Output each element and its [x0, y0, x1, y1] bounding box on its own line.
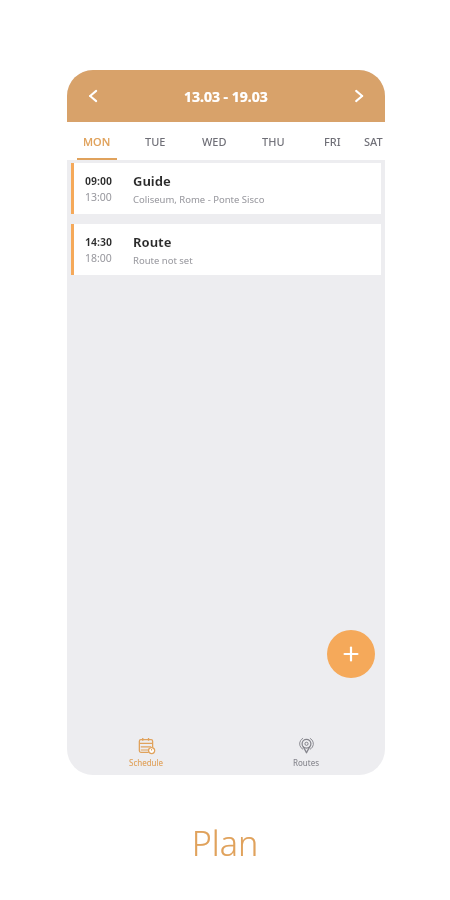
- staticText: 13:00: [85, 190, 112, 204]
- staticText: Coliseum, Rome - Ponte Sisco: [133, 193, 265, 206]
- button[interactable]: TUE: [126, 122, 185, 160]
- staticText: Route: [133, 233, 172, 251]
- staticText: Guide: [133, 172, 171, 190]
- staticText: Routes: [293, 757, 319, 768]
- button[interactable]: FRI: [303, 122, 362, 160]
- staticText: Route not set: [133, 254, 193, 267]
- button[interactable]: Previous week: [75, 78, 111, 114]
- button[interactable]: Schedule: [67, 729, 226, 775]
- staticText: 18:00: [85, 251, 112, 265]
- button[interactable]: 14:30: [71, 224, 381, 275]
- staticText: FRI: [324, 134, 341, 149]
- staticText: Plan: [0, 820, 450, 866]
- staticText: 13.03 - 19.03: [184, 87, 268, 106]
- button[interactable]: 09:00: [71, 163, 381, 214]
- staticText: 14:30: [85, 235, 112, 249]
- staticText: Schedule: [129, 757, 164, 768]
- staticText: WED: [202, 134, 227, 149]
- staticText: TUE: [145, 134, 166, 149]
- button[interactable]: SAT: [362, 122, 385, 160]
- staticText: THU: [262, 134, 285, 149]
- button[interactable]: Add: [327, 630, 375, 678]
- staticText: MON: [83, 134, 111, 149]
- button[interactable]: Next week: [341, 78, 377, 114]
- button[interactable]: THU: [244, 122, 303, 160]
- button[interactable]: Routes: [226, 729, 385, 775]
- button[interactable]: MON: [67, 122, 126, 160]
- button[interactable]: WED: [185, 122, 244, 160]
- staticText: SAT: [364, 134, 383, 149]
- staticText: 09:00: [85, 174, 112, 188]
